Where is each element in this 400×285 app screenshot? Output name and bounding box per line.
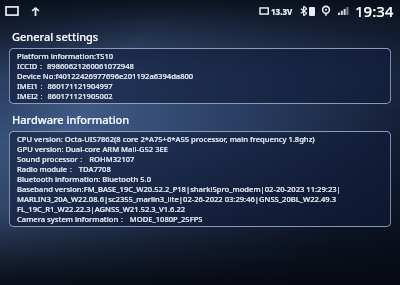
button[interactable]: CPU version: Octa-UIS7862(8 core 2*A75+6… bbox=[9, 131, 391, 227]
button[interactable]: Platform information:TS10 bbox=[9, 48, 391, 104]
staticText: IMEI1： 860171121904997 bbox=[17, 81, 113, 91]
button[interactable]: Hardware information bbox=[0, 112, 400, 127]
staticText: GPU version: Dual-core ARM Mali-G52 3EE bbox=[17, 144, 168, 154]
staticText: Platform information:TS10 bbox=[17, 51, 114, 61]
other: USB connected bbox=[27, 3, 43, 19]
staticText: Bluetooth information: Bluetooth 5.0 bbox=[17, 174, 151, 184]
staticText: MARLIN3_20A_W22.08.6|sc2355_marlin3_lite… bbox=[17, 194, 337, 204]
staticText: General settings bbox=[12, 29, 99, 44]
staticText: FL_19C_R1_W22.22.3|AGNSS_W21.52.3_V1.6.2… bbox=[17, 204, 186, 214]
staticText: Baseband version:FM_BASE_19C_W20.52.2_P1… bbox=[17, 184, 341, 194]
staticText: Sound processor： ROHM32107 bbox=[17, 154, 135, 164]
button[interactable]: Screen off bbox=[3, 2, 21, 20]
staticText: 19:34 bbox=[355, 1, 394, 21]
staticText: ICCID： 89860621260061072948 bbox=[17, 61, 134, 71]
staticText: CPU version: Octa-UIS7862(8 core 2*A75+6… bbox=[17, 134, 315, 144]
button[interactable]: General settings bbox=[0, 29, 400, 44]
staticText: Hardware information bbox=[12, 112, 130, 127]
staticText: IMEI2： 860171121905002 bbox=[17, 91, 113, 101]
staticText: Radio module： TDA7708 bbox=[17, 164, 111, 174]
staticText: 13.3V bbox=[271, 6, 293, 17]
staticText: Camera system information： MODE_1080P_25… bbox=[17, 214, 203, 224]
staticText: Device No:f40122426977696e201192a6394da8… bbox=[17, 71, 194, 81]
